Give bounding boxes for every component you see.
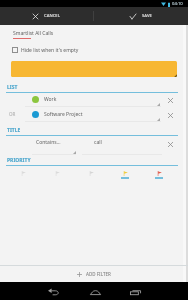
button[interactable]: Work [32, 93, 57, 105]
staticText: LIST [7, 84, 18, 91]
button[interactable]: Home [84, 282, 106, 300]
button[interactable]: Recents [124, 282, 146, 300]
staticText: OR [9, 111, 16, 117]
staticText: Work [44, 96, 57, 103]
button[interactable]: Contains... [36, 139, 61, 146]
staticText: CANCEL [44, 13, 60, 19]
button[interactable]: ADD FILTER [0, 266, 188, 282]
button[interactable]: CANCEL [0, 7, 93, 25]
button[interactable]: Software Project [32, 108, 83, 120]
button[interactable]: Priority [142, 171, 176, 180]
staticText: PRIORITY [7, 157, 31, 164]
button[interactable]: Priority [108, 171, 142, 180]
staticText: SAVE [142, 13, 152, 19]
button[interactable]: Remove filter [164, 94, 176, 106]
button[interactable]: Remove filter [164, 109, 176, 121]
staticText: 04:10 [172, 1, 183, 7]
staticText: Hide list when it's empty [21, 47, 79, 54]
button[interactable]: SAVE [94, 7, 188, 25]
button[interactable]: Back [42, 282, 64, 300]
staticText: ADD FILTER [86, 271, 111, 277]
button[interactable]: Priority [74, 171, 108, 180]
button[interactable] [11, 61, 177, 77]
staticText: TITLE [7, 127, 21, 134]
button[interactable]: call [94, 139, 102, 146]
staticText: Software Project [44, 111, 83, 118]
button[interactable]: Remove filter [164, 138, 176, 150]
staticText: Smartlist All Calls [13, 30, 54, 37]
button[interactable]: Hide list when it's empty [12, 46, 79, 54]
